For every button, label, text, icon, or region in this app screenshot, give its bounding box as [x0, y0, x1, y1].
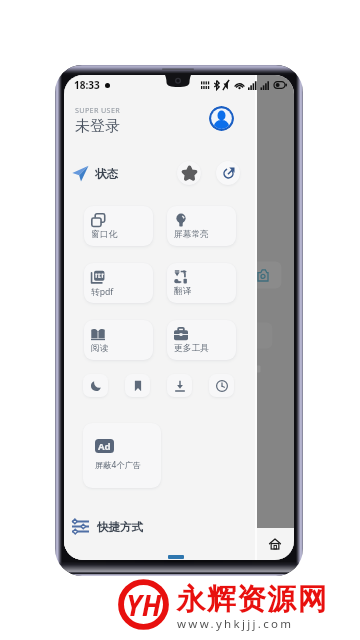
- staticText: 阅读: [91, 343, 109, 354]
- button[interactable]: Night mode: [83, 374, 108, 397]
- button[interactable]: 阅读: [84, 320, 153, 360]
- button[interactable]: Account: [209, 106, 234, 131]
- button[interactable]: 转pdf: [84, 263, 153, 303]
- staticText: 状态: [95, 167, 118, 181]
- button[interactable]: Bookmark: [125, 374, 150, 397]
- button[interactable]: 翻译: [167, 263, 236, 303]
- button[interactable]: Download: [167, 374, 192, 397]
- staticText: Ad: [98, 440, 111, 453]
- staticText: www.yhkjjj.com: [177, 616, 294, 632]
- staticText: 屏幕常亮: [174, 229, 209, 240]
- staticText: 快捷方式: [97, 520, 143, 534]
- staticText: SUPER USER: [75, 105, 121, 115]
- button[interactable]: 快捷方式: [72, 518, 143, 535]
- staticText: 18:33: [74, 78, 100, 92]
- staticText: 屏蔽4个广告: [95, 459, 142, 470]
- staticText: YH: [126, 586, 162, 624]
- button[interactable]: Favorite: [177, 161, 201, 185]
- button[interactable]: 屏幕常亮: [167, 206, 236, 246]
- staticText: 更多工具: [174, 343, 209, 354]
- staticText: 永辉资源网: [176, 581, 327, 618]
- button[interactable]: Home: [266, 535, 284, 553]
- button[interactable]: 窗口化: [84, 206, 153, 246]
- button[interactable]: History: [209, 374, 234, 397]
- button[interactable]: 更多工具: [167, 320, 236, 360]
- staticText: 翻译: [174, 286, 192, 297]
- staticText: 未登录: [75, 117, 120, 136]
- staticText: 窗口化: [91, 229, 118, 240]
- button[interactable]: Refresh: [216, 161, 240, 185]
- staticText: 转pdf: [91, 286, 114, 298]
- button[interactable]: Ad: [83, 423, 161, 488]
- button[interactable]: 状态: [72, 165, 118, 182]
